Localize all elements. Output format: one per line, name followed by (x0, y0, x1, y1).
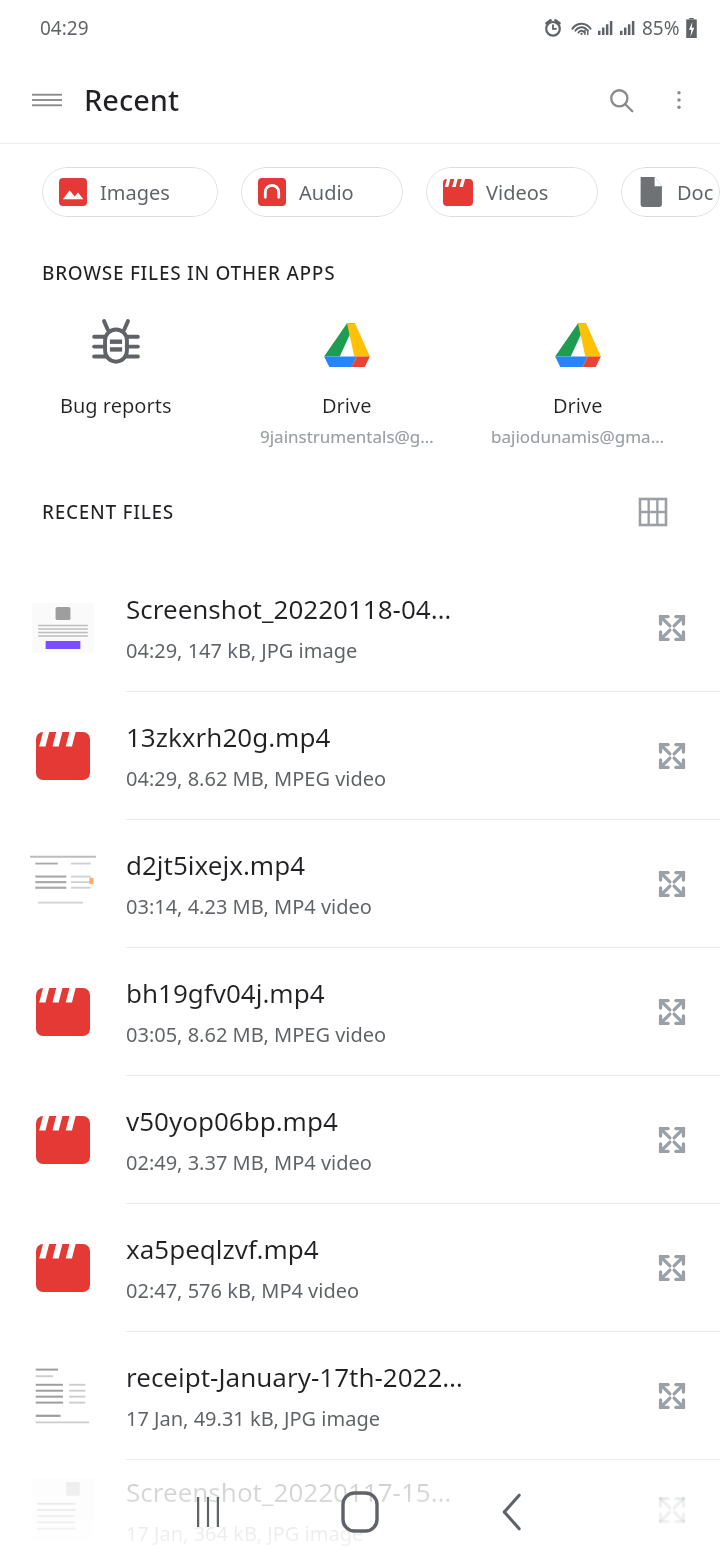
button[interactable]: Switch to grid view (626, 485, 680, 539)
staticText: Videos (486, 179, 549, 206)
button[interactable]: Expand d2jt5ixejx.mp4 (624, 836, 720, 932)
staticText: Recent (84, 80, 180, 119)
staticText: receipt-January-17th-2022… (126, 1359, 463, 1394)
button[interactable]: xa5peqlzvf.mp4 (0, 1204, 720, 1331)
button[interactable]: Expand 13zkxrh20g.mp4 (624, 708, 720, 804)
staticText: RECENT FILES (42, 499, 174, 525)
staticText: 85% (642, 15, 680, 41)
button[interactable]: Drive (231, 312, 462, 454)
button[interactable]: 13zkxrh20g.mp4 (0, 692, 720, 819)
button[interactable]: Expand Screenshot_20220117-15… (624, 1462, 720, 1558)
button[interactable]: More options (650, 71, 708, 129)
staticText: Screenshot_20220118-04… (126, 591, 452, 626)
button[interactable]: Back (464, 1464, 560, 1560)
staticText: v50yop06bp.mp4 (126, 1103, 338, 1138)
button[interactable]: Expand Screenshot_20220118-04… (624, 580, 720, 676)
button[interactable]: receipt-January-17th-2022… (0, 1332, 720, 1459)
button[interactable]: Images (42, 167, 218, 217)
button[interactable]: Docu (621, 167, 720, 217)
button[interactable]: Bug reports (0, 312, 231, 425)
staticText: 02:47, 576 kB, MP4 video (126, 1277, 360, 1304)
staticText: 04:29 (40, 15, 89, 41)
button[interactable]: Screenshot_20220118-04… (0, 564, 720, 691)
button[interactable]: Search (592, 71, 650, 129)
staticText: 03:05, 8.62 MB, MPEG video (126, 1021, 387, 1048)
staticText: Docu (677, 179, 720, 206)
staticText: Bug reports (60, 392, 172, 419)
staticText: 04:29, 147 kB, JPG image (126, 637, 358, 664)
button[interactable]: Videos (426, 167, 598, 217)
staticText: Images (100, 179, 170, 206)
button[interactable]: Drive (462, 312, 693, 454)
button[interactable]: Open navigation drawer (18, 71, 76, 129)
staticText: xa5peqlzvf.mp4 (126, 1231, 319, 1266)
button[interactable]: Expand xa5peqlzvf.mp4 (624, 1220, 720, 1316)
staticText: d2jt5ixejx.mp4 (126, 847, 306, 882)
button[interactable]: Expand bh19gfv04j.mp4 (624, 964, 720, 1060)
staticText: 04:29, 8.62 MB, MPEG video (126, 765, 387, 792)
staticText: bajiodunamis@gma… (491, 425, 665, 448)
button[interactable]: v50yop06bp.mp4 (0, 1076, 720, 1203)
button[interactable]: bh19gfv04j.mp4 (0, 948, 720, 1075)
button[interactable]: d2jt5ixejx.mp4 (0, 820, 720, 947)
button[interactable]: Home (312, 1464, 408, 1560)
button[interactable]: Recent apps (160, 1464, 256, 1560)
staticText: 17 Jan, 49.31 kB, JPG image (126, 1405, 381, 1432)
staticText: 17 Jan, 364 kB, JPG image (126, 1520, 364, 1547)
staticText: Drive (553, 392, 603, 419)
staticText: 02:49, 3.37 MB, MP4 video (126, 1149, 372, 1176)
staticText: 13zkxrh20g.mp4 (126, 719, 331, 754)
button[interactable]: Expand v50yop06bp.mp4 (624, 1092, 720, 1188)
staticText: BROWSE FILES IN OTHER APPS (42, 260, 336, 286)
button[interactable]: Screenshot_20220117-15… (0, 1460, 720, 1560)
staticText: Screenshot_20220117-15… (126, 1474, 452, 1509)
staticText: Drive (322, 392, 372, 419)
button[interactable]: Expand receipt-January-17th-2022… (624, 1348, 720, 1444)
staticText: 03:14, 4.23 MB, MP4 video (126, 893, 372, 920)
staticText: bh19gfv04j.mp4 (126, 975, 325, 1010)
button[interactable]: Audio (241, 167, 403, 217)
staticText: 9jainstrumentals@g… (260, 425, 434, 448)
staticText: Audio (299, 179, 354, 206)
